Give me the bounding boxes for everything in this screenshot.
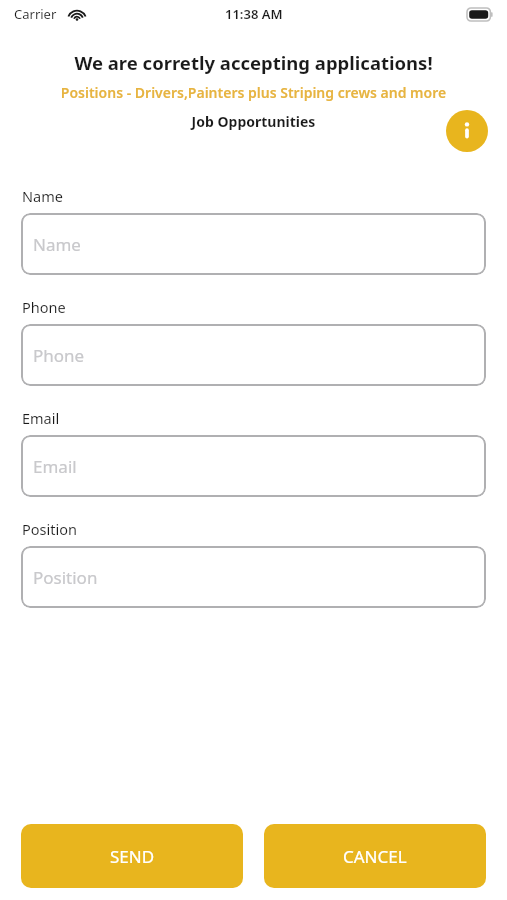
button[interactable]: Position [21, 546, 486, 608]
button[interactable]: Information [446, 110, 488, 152]
staticText: Position [22, 519, 77, 539]
button[interactable]: SEND [21, 824, 243, 888]
staticText: Position [33, 566, 98, 589]
staticText: SEND [110, 845, 155, 868]
staticText: Email [33, 455, 77, 478]
staticText: 11:38 AM [225, 5, 283, 23]
button[interactable]: CANCEL [264, 824, 486, 888]
staticText: Name [22, 186, 63, 206]
staticText: CANCEL [343, 845, 407, 868]
staticText: We are corretly accepting applications! [16, 50, 491, 75]
staticText: Job Opportunities [0, 112, 507, 131]
staticText: Phone [22, 297, 66, 317]
staticText: Email [22, 408, 60, 428]
staticText: Name [33, 233, 81, 256]
staticText: Positions - Drivers,Painters plus Stripi… [52, 83, 455, 102]
button[interactable]: Email [21, 435, 486, 497]
staticText: Phone [33, 344, 85, 367]
staticText: Carrier [14, 5, 57, 23]
button[interactable]: Phone [21, 324, 486, 386]
button[interactable]: Name [21, 213, 486, 275]
